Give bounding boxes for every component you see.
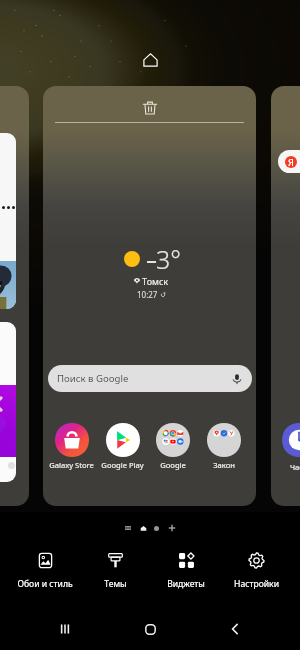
button[interactable]: Add page <box>163 519 181 537</box>
button[interactable]: Remove page <box>137 95 163 121</box>
staticText: Томск <box>142 275 169 287</box>
staticText: Часы <box>290 462 300 472</box>
staticText: Google Play <box>101 460 144 470</box>
button[interactable]: Часы <box>282 423 300 472</box>
button[interactable] <box>0 86 29 506</box>
button[interactable]: Home page <box>134 519 152 537</box>
button[interactable]: Темы <box>80 548 150 590</box>
staticText: 10:27 <box>137 289 158 300</box>
button[interactable]: Виджеты <box>151 548 221 590</box>
button[interactable]: Настройки <box>221 548 291 590</box>
staticText: Google <box>160 460 186 470</box>
button[interactable]: Обои и стиль <box>10 548 80 590</box>
button[interactable]: Закон <box>200 423 247 469</box>
button[interactable]: Поиск в Google <box>48 365 252 392</box>
button[interactable]: App list page <box>119 519 137 537</box>
button[interactable]: Google Play <box>99 423 146 469</box>
button[interactable]: Я <box>271 86 300 506</box>
button[interactable]: Я <box>278 150 300 173</box>
button[interactable]: Home page <box>138 48 162 72</box>
staticText: Настройки <box>234 578 279 590</box>
staticText: Виджеты <box>167 578 205 590</box>
staticText: Я <box>288 156 294 168</box>
staticText: Темы <box>104 578 127 590</box>
staticText: Обои и стиль <box>17 578 73 590</box>
staticText: Galaxy Store <box>49 460 94 470</box>
staticText: Закон <box>213 460 235 470</box>
staticText: Поиск в Google <box>57 372 129 385</box>
button[interactable]: Galaxy Store <box>48 423 95 469</box>
button[interactable]: Back <box>215 609 255 649</box>
button[interactable]: Second page <box>147 519 165 537</box>
button[interactable]: Home <box>130 609 170 649</box>
button[interactable]: Google <box>149 423 196 469</box>
staticText: 3° <box>156 242 181 276</box>
button[interactable]: 3° <box>43 86 256 301</box>
button[interactable]: Recents <box>45 609 85 649</box>
